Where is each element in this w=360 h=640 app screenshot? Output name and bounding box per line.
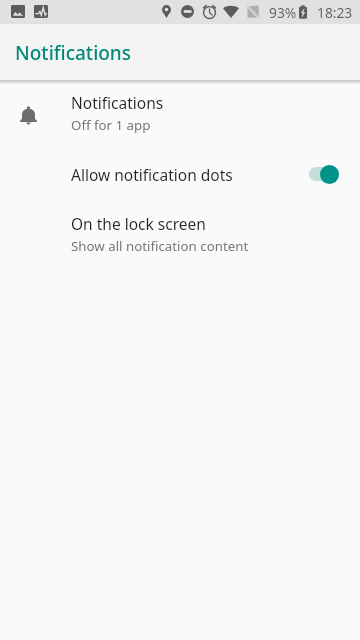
staticText: 18:23 xyxy=(317,3,353,22)
button[interactable]: Allow notification dots toggle xyxy=(309,164,340,184)
staticText: On the lock screen xyxy=(71,213,206,234)
button[interactable]: Notifications xyxy=(0,85,360,145)
button[interactable]: Allow notification dots xyxy=(0,145,360,203)
staticText: Notifications xyxy=(71,92,164,113)
other: Notifications xyxy=(20,106,37,126)
button[interactable]: On the lock screen xyxy=(0,203,360,266)
staticText: Notifications xyxy=(15,40,132,66)
staticText: Allow notification dots xyxy=(71,164,309,185)
staticText: 93% xyxy=(269,3,297,22)
staticText: Off for 1 app xyxy=(71,116,151,134)
staticText: Show all notification content xyxy=(71,237,249,255)
